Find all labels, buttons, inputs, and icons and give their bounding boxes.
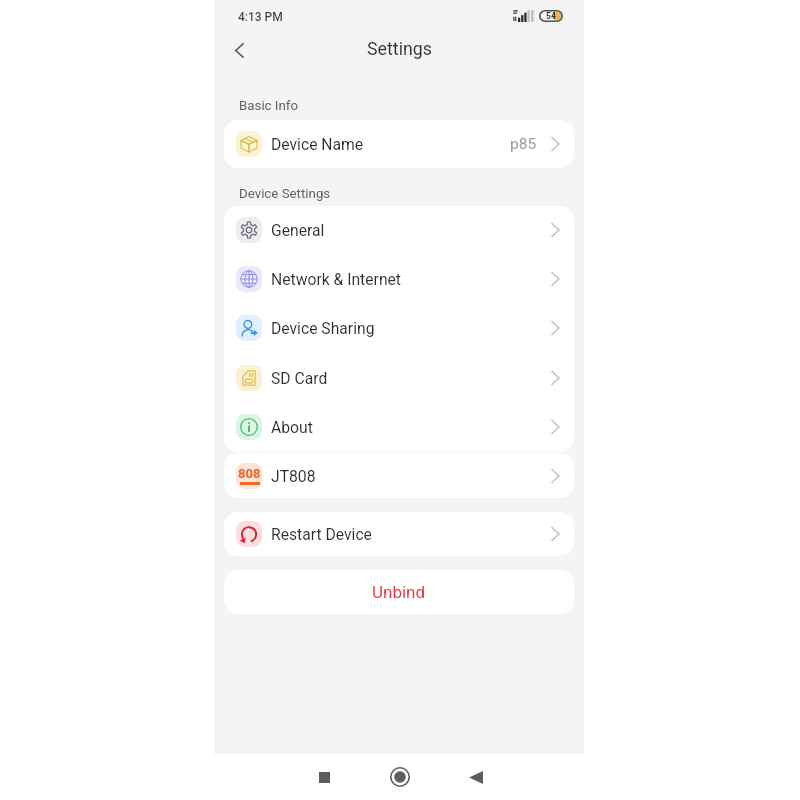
staticText: p85 [510,135,537,153]
button[interactable]: About [224,403,574,451]
button[interactable]: Back [219,30,259,70]
button[interactable]: General [224,206,574,254]
staticText: 808 [238,466,261,481]
button[interactable]: Device Name [224,120,574,168]
button[interactable]: Back [446,754,506,800]
button[interactable]: SD Card [224,354,574,402]
button[interactable]: Network & Internet [224,255,574,303]
staticText: SD Card [271,369,328,387]
staticText: Network & Internet [271,270,401,288]
button[interactable]: Recent apps [294,754,354,800]
staticText: Device Settings [239,186,331,202]
staticText: JT808 [271,467,316,485]
button[interactable]: Restart Device [224,512,574,556]
staticText: Unbind [372,582,426,602]
button[interactable]: Home [370,754,430,800]
button[interactable]: Unbind [224,570,574,614]
staticText: General [271,221,325,239]
staticText: Device Sharing [271,319,375,337]
staticText: Settings [367,38,432,59]
button[interactable]: 808 [224,453,574,498]
staticText: Basic Info [239,98,299,114]
staticText: Restart Device [271,525,372,543]
staticText: 54 [546,11,556,21]
staticText: About [271,418,313,436]
staticText: Device Name [271,135,364,153]
staticText: 4:13 PM [238,10,283,24]
button[interactable]: Device Sharing [224,304,574,352]
